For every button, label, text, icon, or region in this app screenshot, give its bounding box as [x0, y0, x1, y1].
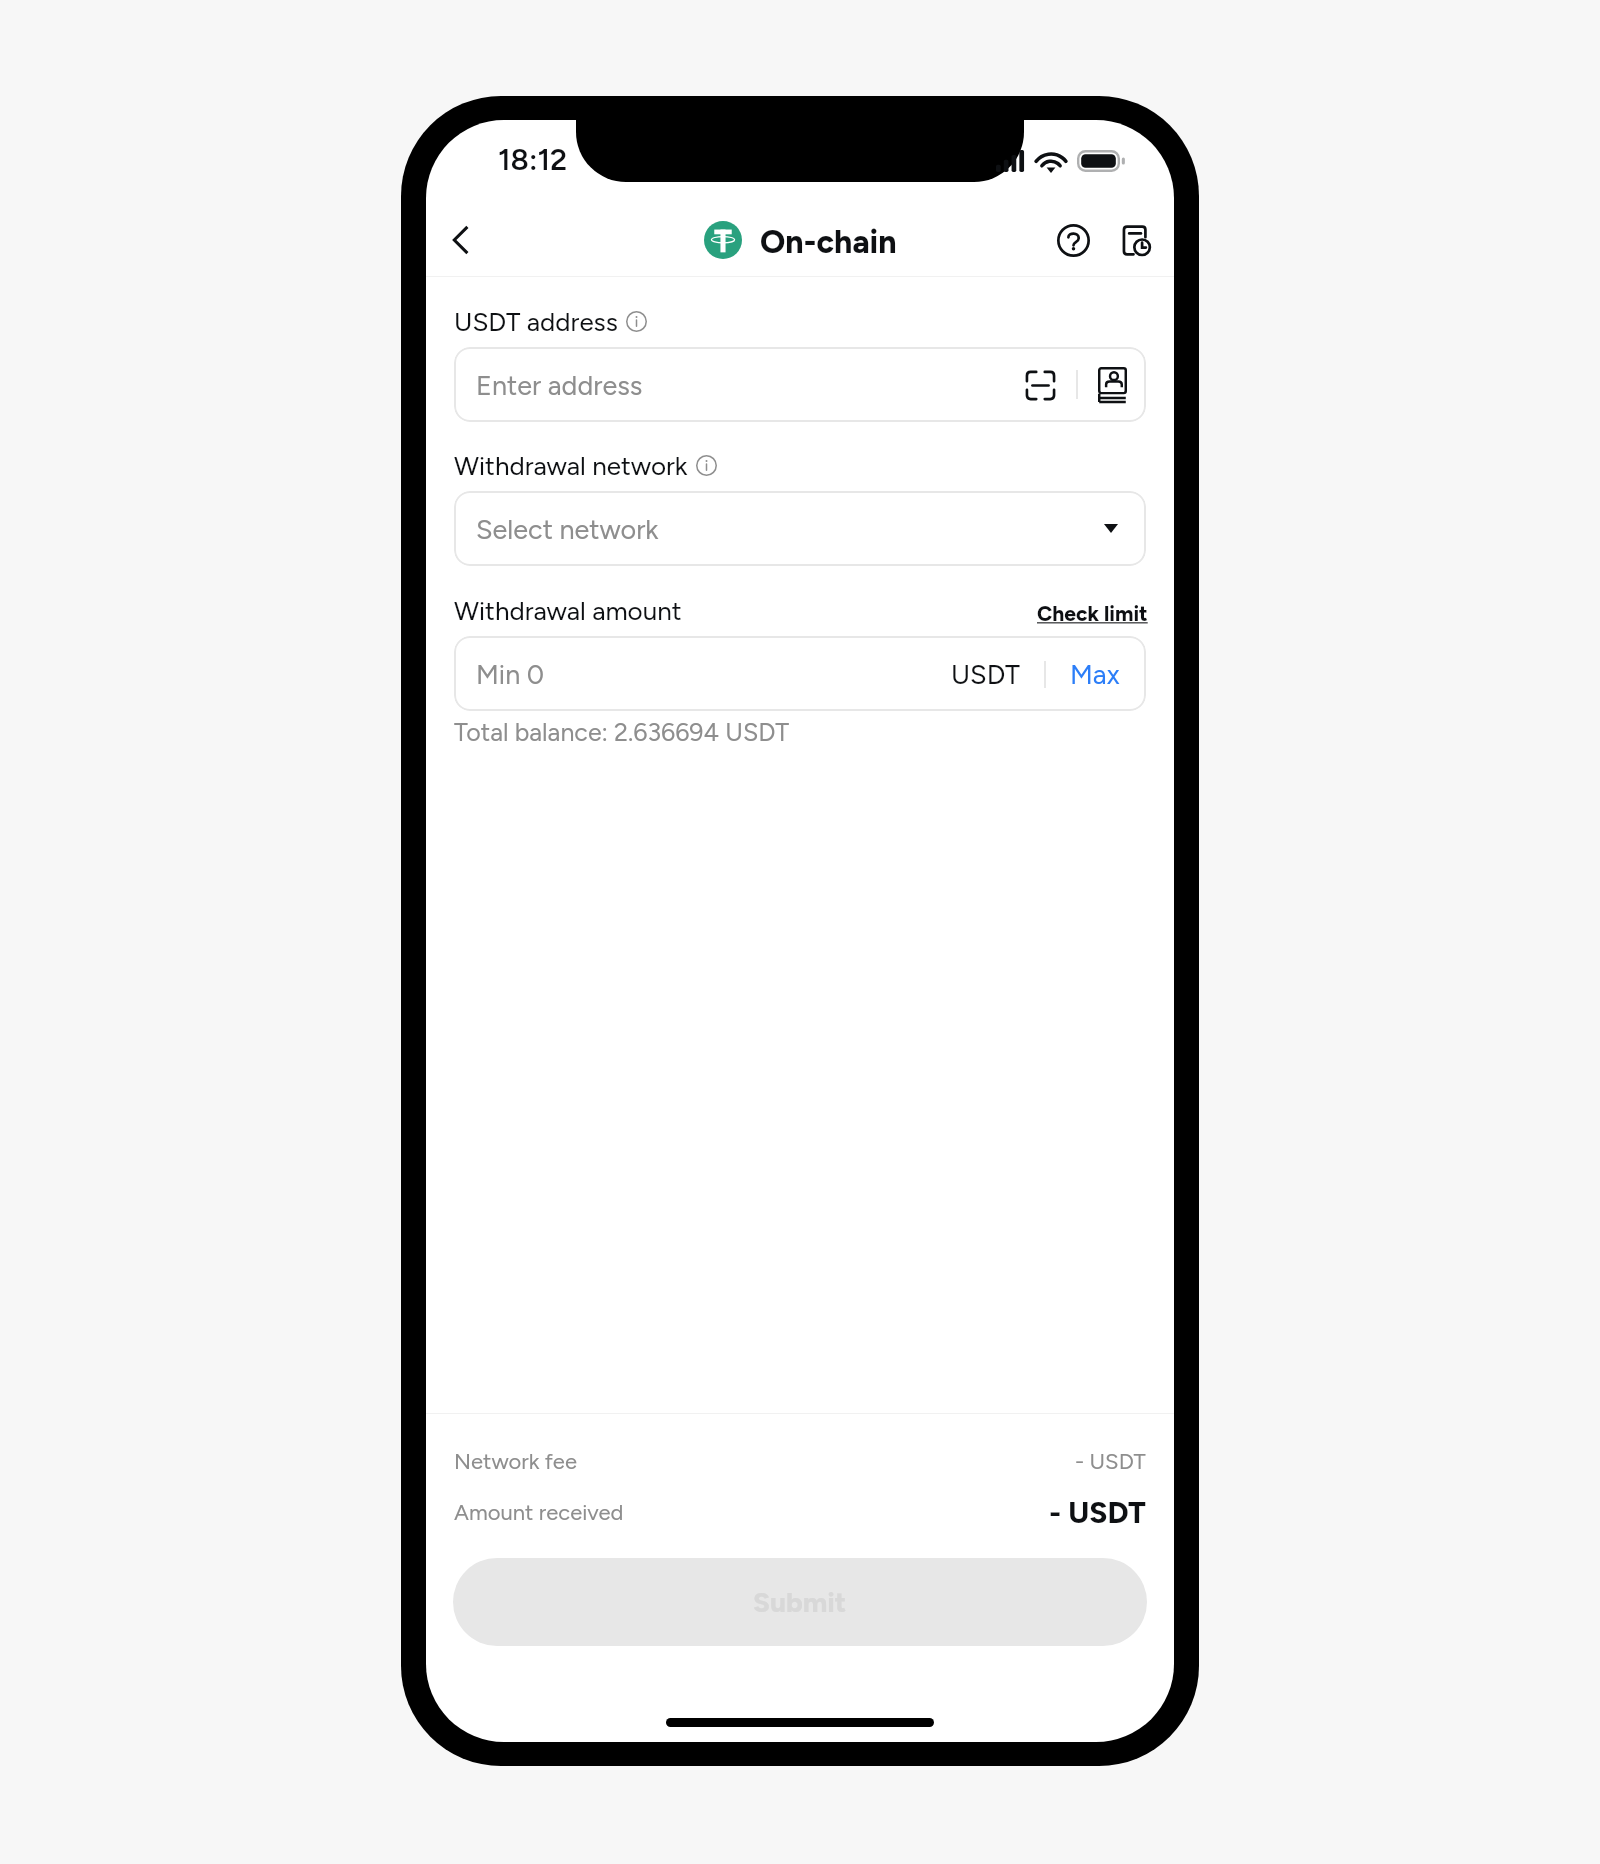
button[interactable]: Transaction history	[1106, 211, 1164, 269]
button[interactable]: Address book	[1086, 355, 1138, 415]
staticText: 18:12	[498, 141, 568, 177]
button[interactable]: Max	[1070, 658, 1120, 690]
staticText: Withdrawal amount	[454, 595, 682, 626]
staticText: Total balance: 2.636694 USDT	[454, 717, 790, 747]
button[interactable]: Help	[1044, 211, 1102, 269]
button[interactable]: Scan QR code	[1014, 355, 1066, 415]
button[interactable]: Select network	[454, 491, 1146, 566]
button[interactable]: Submit	[453, 1558, 1147, 1646]
staticText: Check limit	[1037, 601, 1148, 626]
button[interactable]: Min 0	[454, 636, 1146, 711]
staticText: - USDT	[1075, 1448, 1146, 1474]
staticText: Submit	[753, 1585, 847, 1619]
staticText: On-chain	[760, 223, 897, 261]
staticText: Amount received	[454, 1499, 624, 1525]
staticText: Enter address	[476, 369, 643, 401]
button[interactable]: Enter address	[454, 347, 1146, 422]
staticText: Select network	[476, 513, 659, 545]
staticText: - USDT	[1049, 1494, 1146, 1530]
button[interactable]: Check limit	[1037, 601, 1148, 626]
staticText: Min 0	[476, 658, 545, 690]
staticText: Network fee	[454, 1448, 577, 1474]
staticText: Withdrawal network	[454, 450, 688, 481]
staticText: Max	[1070, 658, 1120, 690]
staticText: USDT address	[454, 306, 618, 337]
staticText: USDT	[951, 658, 1020, 690]
button[interactable]: Back	[432, 211, 490, 269]
